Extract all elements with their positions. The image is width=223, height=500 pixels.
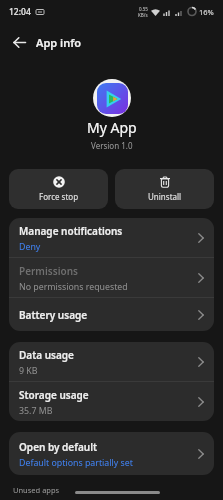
staticText: Version 1.0 <box>91 140 133 151</box>
button[interactable]: Manage notifications <box>9 218 214 257</box>
staticText: Battery usage <box>19 308 88 322</box>
staticText: 12:04 <box>9 6 31 18</box>
staticText: Deny <box>19 241 41 253</box>
button[interactable]: Uninstall <box>115 169 214 209</box>
staticText: KB/s <box>138 12 148 18</box>
staticText: 16% <box>199 7 214 17</box>
staticText: My App <box>87 118 137 137</box>
staticText: Data usage <box>19 348 74 362</box>
staticText: Manage notifications <box>19 224 123 238</box>
button[interactable]: Force stop <box>9 169 108 209</box>
button[interactable]: Open by default <box>9 432 214 475</box>
button[interactable]: Storage usage <box>9 382 214 421</box>
staticText: Force stop <box>39 191 79 202</box>
staticText: 0.55 <box>139 6 148 12</box>
staticText: App info <box>36 35 82 50</box>
staticText: Default options partially set <box>19 457 133 469</box>
button[interactable]: Battery usage <box>9 298 214 331</box>
staticText: 9 KB <box>19 365 38 377</box>
staticText: Open by default <box>19 440 98 454</box>
staticText: Uninstall <box>148 191 182 202</box>
staticText: No permissions requested <box>19 281 128 293</box>
staticText: Storage usage <box>19 388 89 402</box>
button[interactable] <box>75 491 160 494</box>
staticText: Permissions <box>19 264 78 278</box>
button[interactable]: Permissions <box>9 258 214 297</box>
button[interactable]: Data usage <box>9 342 214 381</box>
staticText: 35.7 MB <box>19 405 53 417</box>
staticText: Unused apps <box>13 485 60 495</box>
button[interactable] <box>13 32 33 52</box>
